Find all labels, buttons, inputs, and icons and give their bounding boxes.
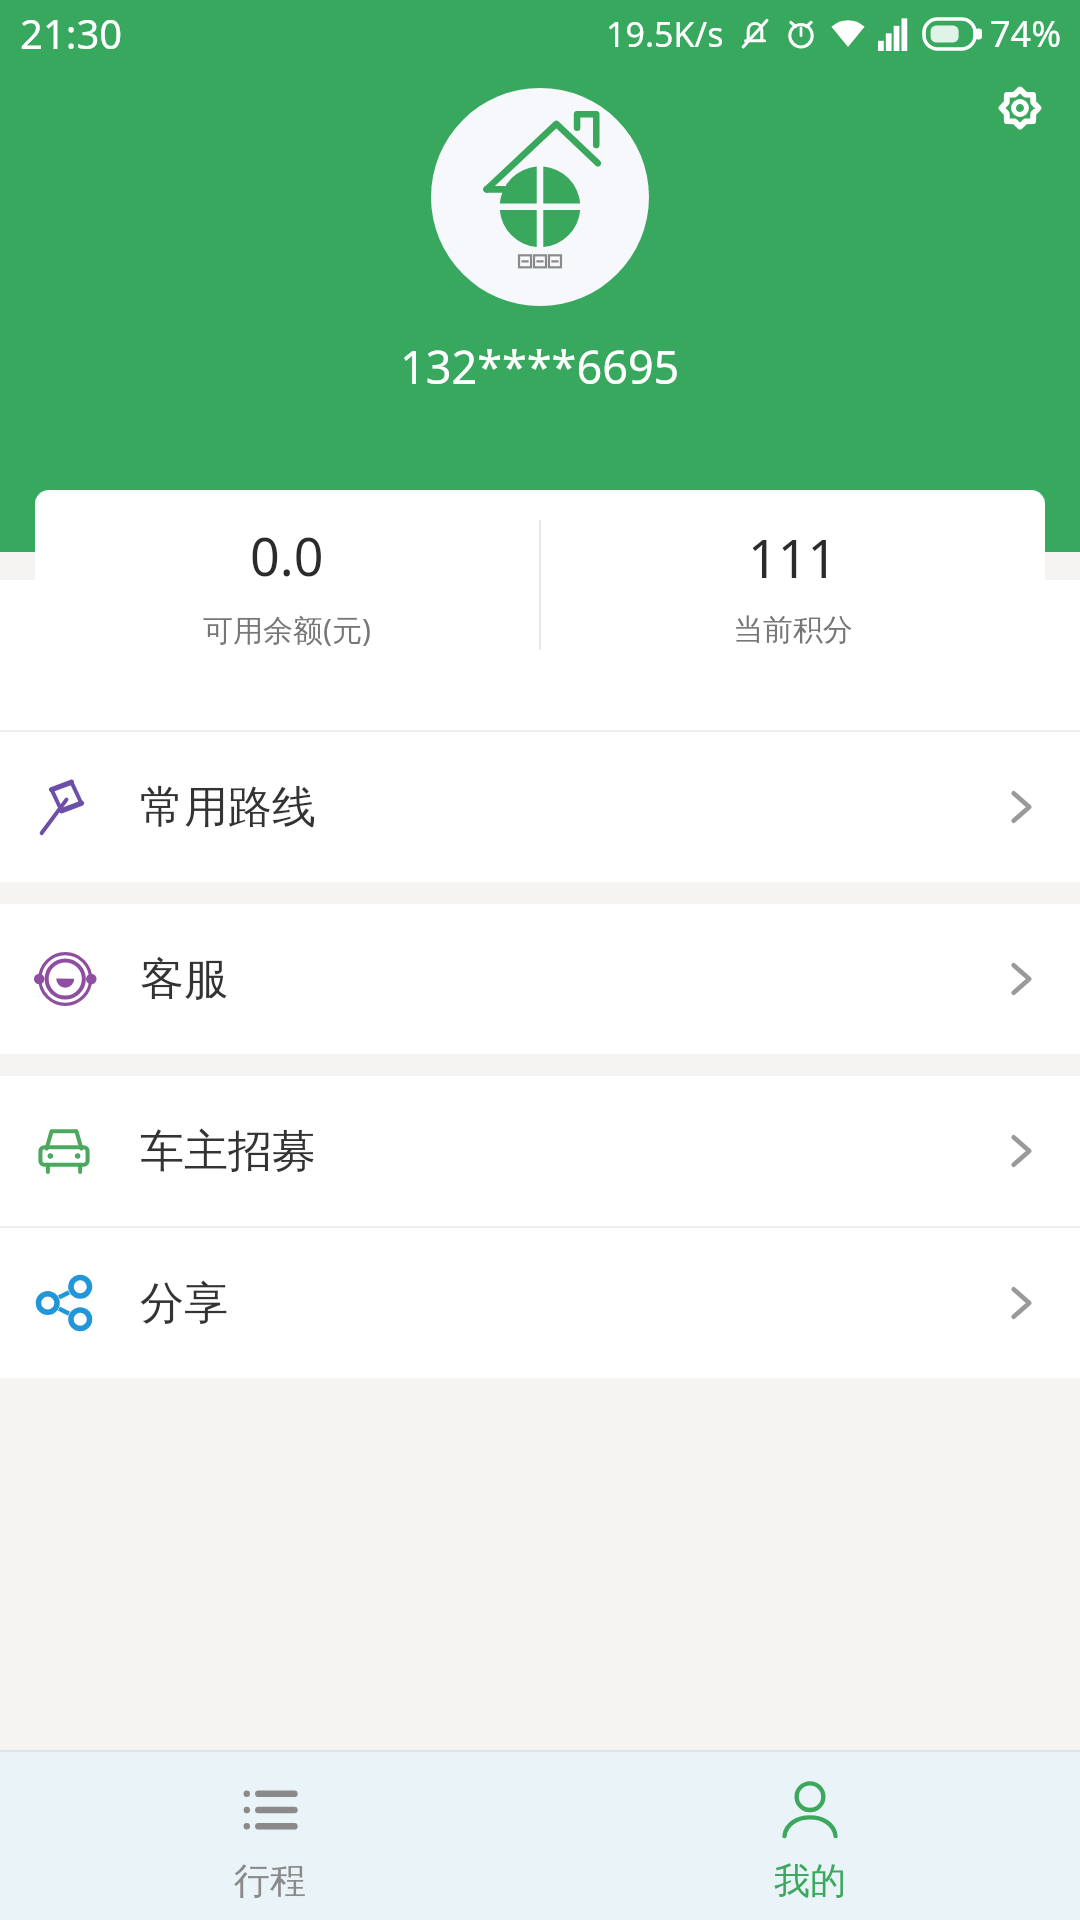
button[interactable]: 0.0: [35, 490, 539, 680]
staticText: 111: [748, 522, 838, 593]
staticText: 分享: [140, 1276, 228, 1331]
button[interactable]: Settings: [984, 72, 1056, 144]
staticText: 132****6695: [400, 336, 680, 397]
button[interactable]: Avatar: [431, 88, 649, 306]
staticText: 19.5K/s: [606, 11, 724, 57]
staticText: 我的: [774, 1858, 846, 1903]
button[interactable]: 我的行程: [0, 580, 1080, 730]
button[interactable]: 行程: [0, 1752, 540, 1920]
staticText: 行程: [234, 1858, 306, 1903]
staticText: 客服: [140, 952, 228, 1007]
button[interactable]: 车主招募: [0, 1076, 1080, 1226]
staticText: 74%: [990, 9, 1062, 58]
button[interactable]: 分享: [0, 1228, 1080, 1378]
button[interactable]: 客服: [0, 904, 1080, 1054]
button[interactable]: 111: [541, 490, 1045, 680]
staticText: 常用路线: [140, 780, 316, 835]
button[interactable]: 常用路线: [0, 732, 1080, 882]
staticText: 当前积分: [733, 611, 853, 649]
button[interactable]: 我的: [540, 1752, 1080, 1920]
staticText: 车主招募: [140, 1124, 316, 1179]
staticText: 0.0: [250, 520, 324, 591]
staticText: 可用余额(元): [203, 609, 371, 650]
staticText: 我的行程: [140, 628, 316, 683]
staticText: 21:30: [20, 6, 123, 60]
